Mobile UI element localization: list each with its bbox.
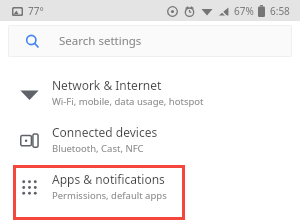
- staticText: Connected devices: [52, 124, 158, 140]
- staticText: Network & Internet: [52, 77, 162, 93]
- staticText: 67%: [234, 4, 254, 18]
- button[interactable]: Apps & notifications: [0, 163, 300, 210]
- staticText: 6:58: [270, 4, 290, 18]
- staticText: Wi-Fi, mobile, data usage, hotspot: [52, 95, 204, 108]
- staticText: 77°: [28, 4, 44, 18]
- staticText: Bluetooth, Cast, NFC: [52, 142, 144, 155]
- button[interactable]: Network & Internet: [0, 69, 300, 116]
- staticText: Search settings: [59, 33, 142, 49]
- button[interactable]: Search settings: [8, 25, 292, 57]
- staticText: Apps & notifications: [52, 171, 165, 187]
- button[interactable]: Connected devices: [0, 116, 300, 163]
- staticText: Permissions, default apps: [52, 189, 167, 202]
